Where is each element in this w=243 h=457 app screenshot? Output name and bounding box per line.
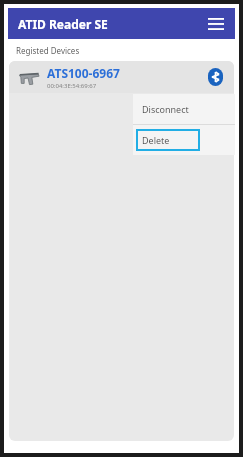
staticText: 00:04:3E:54:69:67 (47, 82, 97, 90)
button[interactable]: Open navigation menu (201, 9, 231, 39)
button[interactable]: Delete (133, 125, 235, 155)
staticText: Delete (142, 134, 170, 146)
button[interactable]: ATS100-6967 (9, 61, 234, 93)
staticText: ATID Reader SE (18, 16, 108, 32)
staticText: Disconnect (142, 103, 189, 115)
button[interactable]: Bluetooth connected (202, 64, 228, 90)
staticText: ATS100-6967 (47, 65, 120, 81)
staticText: Registed Devices (16, 45, 80, 56)
button[interactable]: Disconnect (133, 94, 235, 124)
